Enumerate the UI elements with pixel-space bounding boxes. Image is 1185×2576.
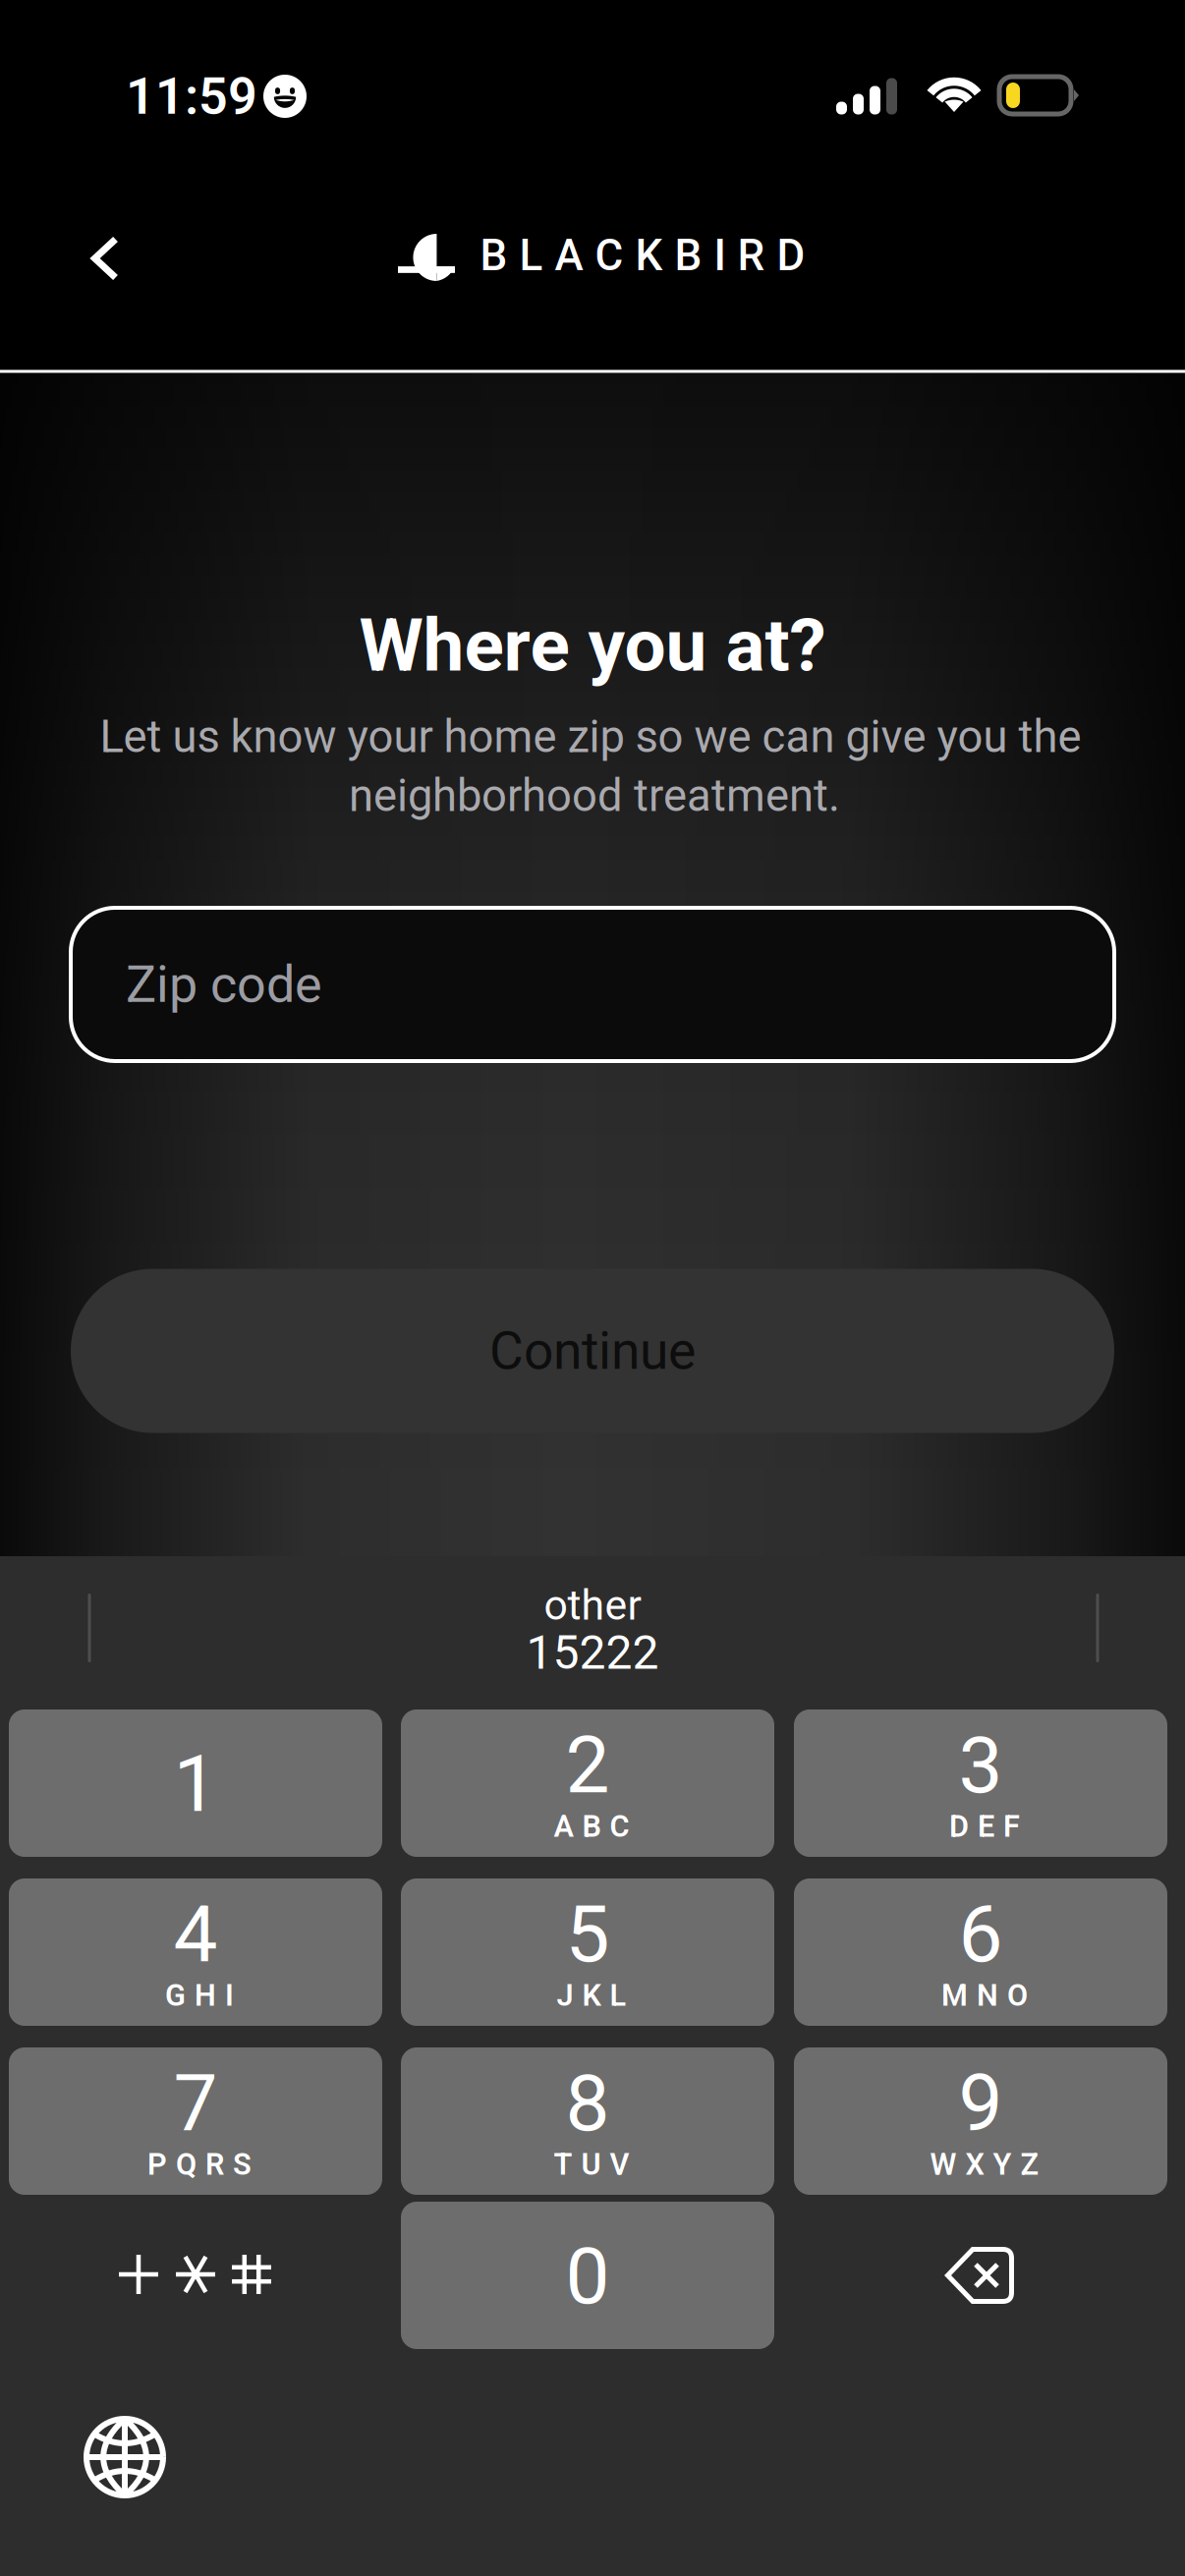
button[interactable]: 7: [9, 2047, 382, 2195]
button[interactable]: 8: [401, 2047, 774, 2195]
staticText: TUV: [554, 2147, 629, 2182]
staticText: ABC: [554, 1809, 629, 1844]
button[interactable]: Back: [51, 204, 159, 312]
button[interactable]: Delete: [793, 2202, 1166, 2349]
staticText: JKL: [557, 1978, 626, 2013]
staticText: Continue: [489, 1320, 696, 1382]
staticText: other: [544, 1581, 641, 1630]
staticText: 5: [565, 1888, 610, 1981]
button[interactable]: 0: [401, 2202, 774, 2349]
staticText: BLACKBIRD: [480, 230, 805, 281]
button[interactable]: 1: [9, 1709, 382, 1857]
staticText: 11:59: [126, 66, 257, 126]
staticText: MNO: [941, 1978, 1028, 2013]
staticText: 15222: [526, 1625, 659, 1680]
staticText: Zip code: [126, 954, 322, 1014]
button[interactable]: 5: [401, 1878, 774, 2026]
staticText: 4: [173, 1888, 218, 1981]
staticText: DEF: [949, 1809, 1020, 1844]
button[interactable]: Next keyboard: [56, 2388, 194, 2526]
staticText: 8: [565, 2057, 610, 2150]
button[interactable]: Continue: [71, 1269, 1114, 1433]
staticText: 7: [173, 2057, 218, 2150]
button[interactable]: 2: [401, 1709, 774, 1857]
button[interactable]: 4: [9, 1878, 382, 2026]
staticText: WXYZ: [930, 2147, 1039, 2182]
button[interactable]: Symbols: [9, 2202, 382, 2349]
staticText: Where you at?: [359, 602, 826, 688]
staticText: neighborhood treatment.: [349, 770, 840, 822]
staticText: 1: [173, 1738, 218, 1830]
staticText: GHI: [165, 1978, 234, 2013]
button[interactable]: 6: [794, 1878, 1167, 2026]
staticText: PQRS: [147, 2147, 252, 2182]
staticText: 3: [959, 1719, 1003, 1812]
button[interactable]: 3: [794, 1709, 1167, 1857]
staticText: 6: [959, 1888, 1003, 1981]
staticText: Let us know your home zip so we can give…: [100, 711, 1081, 763]
staticText: 0: [565, 2230, 610, 2322]
button[interactable]: 9: [794, 2047, 1167, 2195]
staticText: 9: [959, 2057, 1003, 2150]
staticText: 2: [565, 1719, 610, 1812]
